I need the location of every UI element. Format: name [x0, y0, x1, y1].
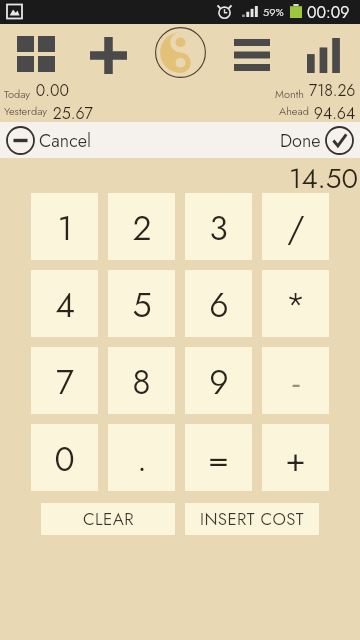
- staticText: 3: [209, 204, 228, 253]
- button[interactable]: 5: [108, 270, 175, 337]
- staticText: /: [287, 204, 305, 253]
- staticText: +: [285, 435, 306, 484]
- staticText: Month: [275, 86, 304, 102]
- button[interactable]: +: [262, 424, 329, 491]
- button[interactable]: Add: [90, 37, 127, 74]
- button[interactable]: INSERT COST: [185, 503, 319, 535]
- button[interactable]: 1: [31, 193, 98, 260]
- staticText: Cancel: [39, 128, 92, 154]
- staticText: 0: [54, 435, 75, 484]
- button[interactable]: =: [185, 424, 252, 491]
- staticText: 2: [132, 204, 152, 253]
- staticText: 5: [132, 281, 152, 330]
- staticText: 0.00: [31, 79, 69, 102]
- staticText: 14.50: [289, 158, 359, 188]
- staticText: *: [285, 281, 306, 330]
- button[interactable]: Done: [280, 126, 354, 155]
- button[interactable]: 0: [31, 424, 98, 491]
- button[interactable]: -: [262, 347, 329, 414]
- button[interactable]: 3: [185, 193, 252, 260]
- button[interactable]: Balance: [155, 27, 206, 78]
- staticText: Today: [4, 86, 31, 102]
- button[interactable]: Menu: [234, 39, 270, 71]
- button[interactable]: .: [108, 424, 175, 491]
- button[interactable]: Statistics: [307, 38, 340, 73]
- staticText: 4: [55, 281, 75, 330]
- button[interactable]: CLEAR: [41, 503, 175, 535]
- staticText: 8: [132, 358, 151, 407]
- staticText: 59%: [263, 4, 284, 20]
- button[interactable]: 2: [108, 193, 175, 260]
- staticText: Ahead: [279, 103, 309, 119]
- staticText: Yesterday: [4, 103, 48, 119]
- staticText: .: [137, 435, 147, 484]
- button[interactable]: *: [262, 270, 329, 337]
- staticText: CLEAR: [83, 507, 134, 532]
- staticText: Done: [280, 128, 321, 154]
- staticText: 94.64: [309, 102, 356, 119]
- staticText: -: [292, 358, 300, 407]
- staticText: 6: [209, 281, 229, 330]
- staticText: 7: [56, 358, 74, 407]
- button[interactable]: 9: [185, 347, 252, 414]
- button[interactable]: Grid: [17, 36, 55, 72]
- staticText: 1: [57, 204, 73, 253]
- button[interactable]: Cancel: [6, 126, 92, 155]
- staticText: 718.26: [304, 79, 356, 102]
- staticText: =: [208, 435, 229, 484]
- staticText: 9: [209, 358, 229, 407]
- button[interactable]: 4: [31, 270, 98, 337]
- button[interactable]: /: [262, 193, 329, 260]
- staticText: 00:09: [307, 1, 350, 24]
- staticText: 25.67: [48, 102, 93, 119]
- staticText: INSERT COST: [200, 507, 305, 532]
- button[interactable]: 6: [185, 270, 252, 337]
- button[interactable]: 7: [31, 347, 98, 414]
- button[interactable]: 8: [108, 347, 175, 414]
